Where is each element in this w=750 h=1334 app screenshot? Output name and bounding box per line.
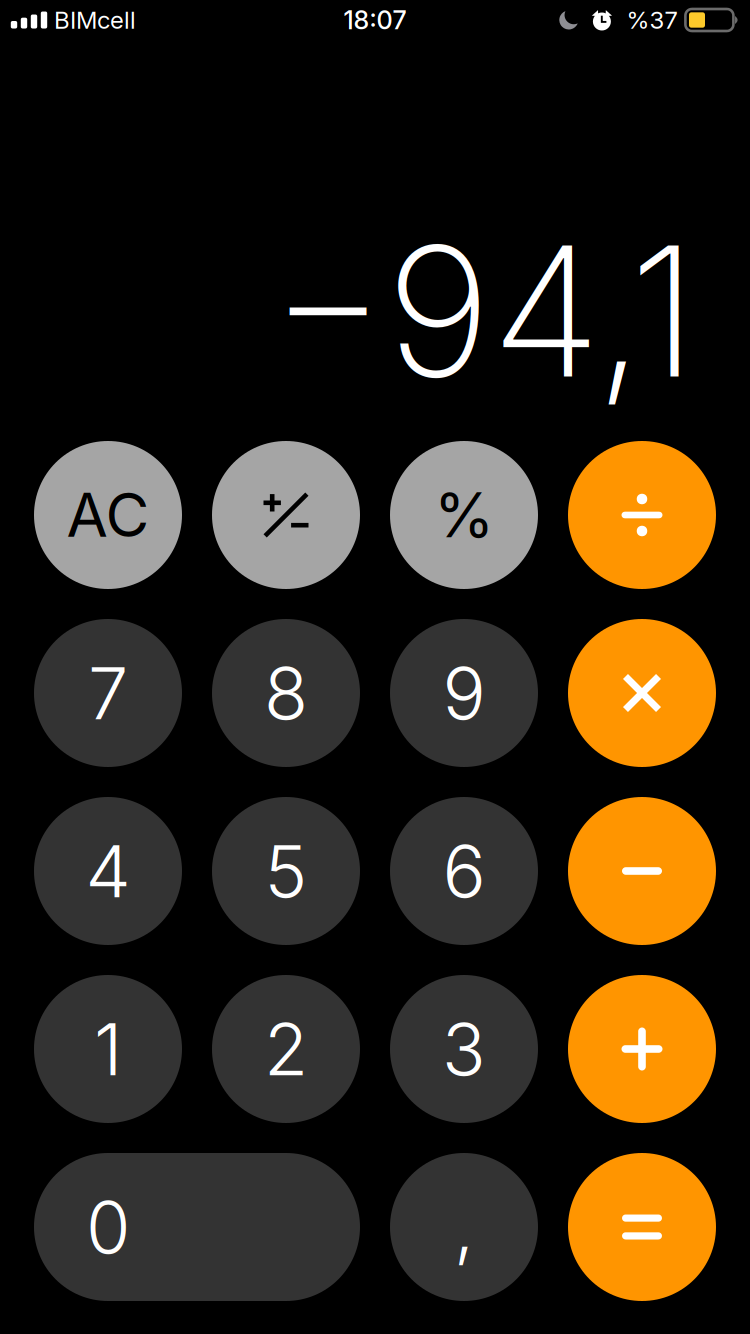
- staticText: AC: [66, 479, 149, 551]
- staticText: 8: [264, 649, 308, 736]
- staticText: −94,1: [270, 202, 697, 420]
- staticText: 2: [264, 1005, 308, 1092]
- button[interactable]: 0: [34, 1153, 360, 1301]
- button[interactable]: 7: [34, 619, 182, 767]
- staticText: 3: [442, 1005, 486, 1092]
- button[interactable]: 3: [390, 975, 538, 1123]
- staticText: 18:07: [343, 5, 406, 35]
- button[interactable]: 6: [390, 797, 538, 945]
- staticText: ,: [454, 1183, 474, 1270]
- staticText: %37: [626, 5, 677, 34]
- staticText: 6: [442, 827, 485, 914]
- button[interactable]: 4: [34, 797, 182, 945]
- button[interactable]: All clear: [34, 441, 182, 589]
- button[interactable]: 8: [212, 619, 360, 767]
- button[interactable]: Percent: [390, 441, 538, 589]
- button[interactable]: Divide: [568, 441, 716, 589]
- button[interactable]: Add: [568, 975, 716, 1123]
- staticText: BIMcell: [54, 5, 136, 34]
- staticText: 9: [442, 649, 485, 736]
- staticText: %: [434, 478, 494, 552]
- staticText: 7: [88, 649, 128, 736]
- button[interactable]: Toggle sign: [212, 441, 360, 589]
- staticText: 1: [94, 1005, 122, 1092]
- staticText: 5: [264, 827, 307, 914]
- button[interactable]: ,: [390, 1153, 538, 1301]
- button[interactable]: Subtract: [568, 797, 716, 945]
- button[interactable]: Equals: [568, 1153, 716, 1301]
- button[interactable]: 5: [212, 797, 360, 945]
- button[interactable]: 1: [34, 975, 182, 1123]
- button[interactable]: Multiply: [568, 619, 716, 767]
- button[interactable]: 2: [212, 975, 360, 1123]
- button[interactable]: 9: [390, 619, 538, 767]
- staticText: 4: [85, 827, 130, 914]
- staticText: 0: [86, 1183, 130, 1270]
